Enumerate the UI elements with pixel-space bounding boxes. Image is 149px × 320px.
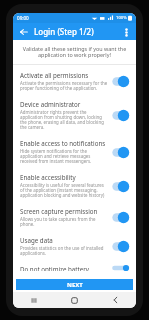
- staticText: 09:00: [17, 15, 29, 21]
- staticText: NEXT: [67, 281, 83, 289]
- staticText: Hide system notifications for the applic…: [20, 148, 108, 165]
- button[interactable]: Toggle setting: [112, 181, 129, 192]
- button[interactable]: Back: [95, 292, 136, 308]
- staticText: 100%: [116, 15, 127, 21]
- staticText: Administrator rights prevent the applica…: [20, 109, 108, 131]
- button[interactable]: Recent apps: [13, 292, 54, 308]
- button[interactable]: Toggle setting: [112, 265, 129, 271]
- staticText: Device administrator: [20, 100, 81, 108]
- staticText: Accessibility is useful for several feat…: [20, 182, 108, 199]
- button[interactable]: Usage data: [15, 232, 134, 261]
- staticText: Usage data: [20, 236, 53, 244]
- staticText: Validate all these settings if you want …: [19, 45, 130, 59]
- staticText: Allows you to take captures from the pho…: [20, 216, 108, 228]
- button[interactable]: Toggle setting: [112, 147, 129, 158]
- staticText: Provides statistics on the use of instal…: [20, 245, 108, 257]
- staticText: Enable access to notifications: [20, 139, 106, 147]
- button[interactable]: Enable accessibility: [15, 169, 134, 203]
- staticText: Activate the permissions necessary for t…: [20, 80, 108, 92]
- button[interactable]: More options: [120, 26, 132, 38]
- staticText: Login (Step 1/2): [34, 26, 94, 37]
- button[interactable]: Home: [54, 292, 95, 308]
- staticText: Enable accessibility: [20, 173, 76, 181]
- button[interactable]: Activate all permissions: [15, 67, 134, 96]
- button[interactable]: Device administrator: [15, 96, 134, 135]
- button[interactable]: Toggle setting: [112, 76, 129, 87]
- button[interactable]: Toggle setting: [112, 241, 129, 252]
- button[interactable]: Toggle setting: [112, 110, 129, 121]
- button[interactable]: Back: [17, 25, 30, 38]
- staticText: Do not optimize battery usage: [20, 265, 108, 271]
- button[interactable]: Toggle setting: [112, 212, 129, 223]
- staticText: Screen capture permission: [20, 207, 98, 215]
- button[interactable]: Do not optimize battery usage: [15, 261, 134, 275]
- staticText: Activate all permissions: [20, 71, 89, 79]
- button[interactable]: Screen capture permission: [15, 203, 134, 232]
- button[interactable]: NEXT: [16, 279, 133, 290]
- button[interactable]: Enable access to notifications: [15, 135, 134, 169]
